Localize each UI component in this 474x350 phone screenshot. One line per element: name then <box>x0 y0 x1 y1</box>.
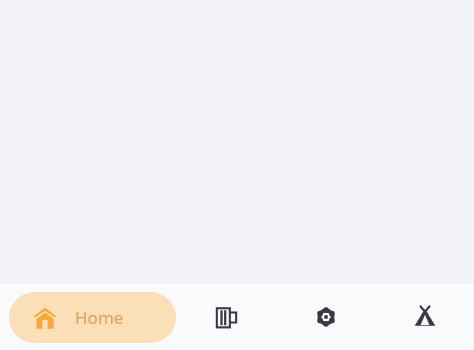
button[interactable]: Drinks <box>176 284 276 350</box>
button[interactable]: Home <box>9 292 176 343</box>
staticText: Home <box>75 306 124 329</box>
button[interactable]: Camping <box>375 284 474 350</box>
button[interactable]: Science <box>276 284 375 350</box>
